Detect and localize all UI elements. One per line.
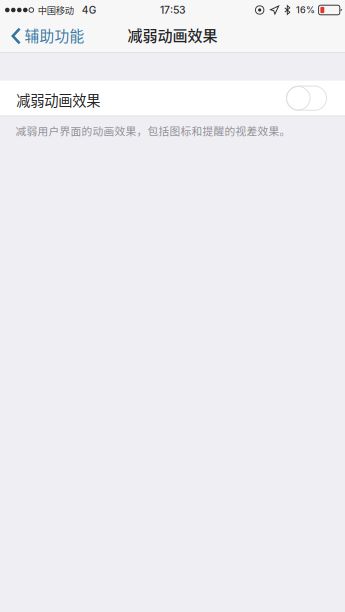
button[interactable]: 返回 辅助功能 — [0, 20, 92, 52]
staticText: 中国移动 — [38, 3, 74, 17]
staticText: 16% — [296, 4, 315, 15]
staticText: 辅助功能 — [24, 25, 84, 46]
staticText: 17:53 — [160, 4, 186, 16]
staticText: 4G — [82, 4, 97, 16]
staticText: 减弱动画效果 — [16, 89, 100, 110]
button[interactable]: 减弱动画效果 — [286, 86, 327, 110]
staticText: 减弱动画效果 — [127, 24, 217, 46]
staticText: 减弱用户界面的动画效果，包括图标和提醒的视差效果。 — [15, 123, 290, 138]
